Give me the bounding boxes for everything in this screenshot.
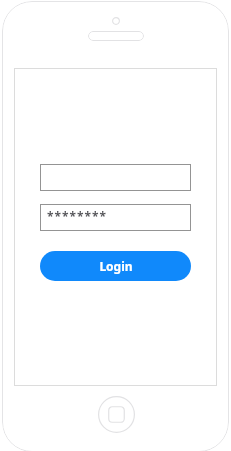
button[interactable]: Login [40,251,191,281]
button[interactable]: Username input field [40,164,191,191]
staticText: Login [99,258,133,274]
button[interactable]: Home button [98,396,135,433]
staticText: ******** [47,208,108,224]
button[interactable]: ******** [40,204,191,231]
